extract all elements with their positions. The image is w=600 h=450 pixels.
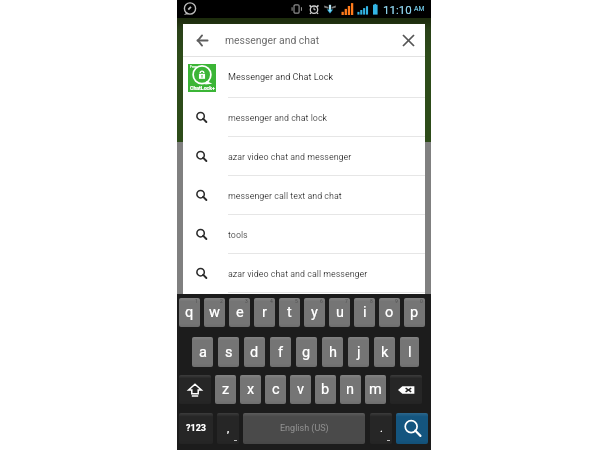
staticText: r [262, 304, 267, 321]
button[interactable]: o [379, 298, 400, 327]
staticText: f [278, 344, 284, 361]
button[interactable]: Clear search [392, 24, 425, 56]
staticText: 5 [295, 298, 298, 304]
staticText: 0 [420, 298, 423, 304]
staticText: w [209, 304, 220, 321]
button[interactable]: e [229, 298, 250, 327]
staticText: Messenger and Chat Lock [228, 72, 334, 83]
button[interactable]: English (US) [243, 413, 365, 444]
button[interactable]: b [315, 375, 336, 404]
staticText: messenger and chat [225, 34, 392, 46]
staticText: s [225, 344, 233, 361]
button[interactable]: azar video chat and messenger [183, 137, 425, 176]
button[interactable]: f [270, 337, 291, 367]
staticText: messenger call text and chat [228, 191, 342, 201]
button[interactable]: z [215, 375, 236, 404]
button[interactable]: s [218, 337, 239, 367]
staticText: h [329, 344, 337, 361]
staticText: m [369, 381, 382, 398]
staticText: n [346, 381, 355, 398]
button[interactable]: . [370, 413, 392, 444]
button[interactable]: r [254, 298, 275, 327]
staticText: p [410, 304, 419, 321]
button[interactable]: k [374, 337, 395, 367]
button[interactable]: messenger call text and chat [183, 176, 425, 215]
staticText: 7 [345, 298, 348, 304]
staticText: v [297, 381, 305, 398]
button[interactable]: t [279, 298, 300, 327]
staticText: English (US) [280, 423, 329, 434]
staticText: 2 [220, 298, 223, 304]
staticText: 3 [245, 298, 248, 304]
button[interactable]: Back [183, 24, 225, 56]
button[interactable]: c [265, 375, 286, 404]
staticText: g [302, 344, 311, 361]
button[interactable]: w [204, 298, 225, 327]
staticText: AM [414, 5, 425, 13]
staticText: b [321, 381, 330, 398]
button[interactable] [179, 375, 211, 404]
button[interactable]: j [348, 337, 369, 367]
button[interactable]: q [179, 298, 200, 327]
staticText: t [287, 304, 292, 321]
button[interactable]: ?123 [179, 413, 213, 444]
staticText: messenger and chat lock [228, 113, 328, 123]
button[interactable]: n [340, 375, 361, 404]
button[interactable]: a [192, 337, 213, 367]
staticText: 9 [395, 298, 398, 304]
staticText: y [311, 304, 318, 321]
button[interactable]: x [240, 375, 261, 404]
staticText: a [199, 344, 207, 361]
staticText: i [363, 304, 367, 321]
button[interactable]: azar video chat and call messenger [183, 254, 425, 293]
staticText: u [336, 304, 344, 321]
button[interactable]: p [404, 298, 425, 327]
staticText: d [250, 344, 259, 361]
staticText: ?123 [186, 423, 206, 434]
staticText: 8 [370, 298, 373, 304]
button[interactable]: , [217, 413, 239, 444]
button[interactable]: Free [183, 57, 425, 98]
staticText: . [380, 422, 383, 435]
button[interactable]: y [304, 298, 325, 327]
staticText: o [385, 304, 394, 321]
button[interactable]: l [400, 337, 419, 367]
button[interactable]: messenger and chat lock [183, 98, 425, 137]
staticText: azar video chat and call messenger [228, 269, 368, 279]
staticText: 6 [320, 298, 323, 304]
staticText: l [408, 344, 412, 361]
staticText: z [222, 381, 230, 398]
staticText: Free [190, 65, 197, 69]
button[interactable]: h [322, 337, 343, 367]
staticText: j [357, 344, 361, 361]
staticText: ChatLock+ [190, 85, 215, 91]
button[interactable]: m [365, 375, 386, 404]
staticText: e [236, 304, 244, 321]
button[interactable]: v [290, 375, 311, 404]
staticText: 1 [195, 298, 198, 304]
staticText: , [227, 422, 230, 435]
button[interactable]: i [354, 298, 375, 327]
button[interactable] [390, 375, 422, 404]
staticText: 11:10 [383, 3, 412, 16]
staticText: k [381, 344, 389, 361]
button[interactable] [396, 413, 428, 444]
staticText: 4 [270, 298, 273, 304]
staticText: tools [228, 230, 248, 240]
staticText: q [185, 304, 194, 321]
button[interactable]: g [296, 337, 317, 367]
button[interactable]: u [329, 298, 350, 327]
staticText: x [247, 381, 255, 398]
button[interactable]: tools [183, 215, 425, 254]
staticText: c [272, 381, 280, 398]
button[interactable]: d [244, 337, 265, 367]
staticText: azar video chat and messenger [228, 152, 352, 162]
